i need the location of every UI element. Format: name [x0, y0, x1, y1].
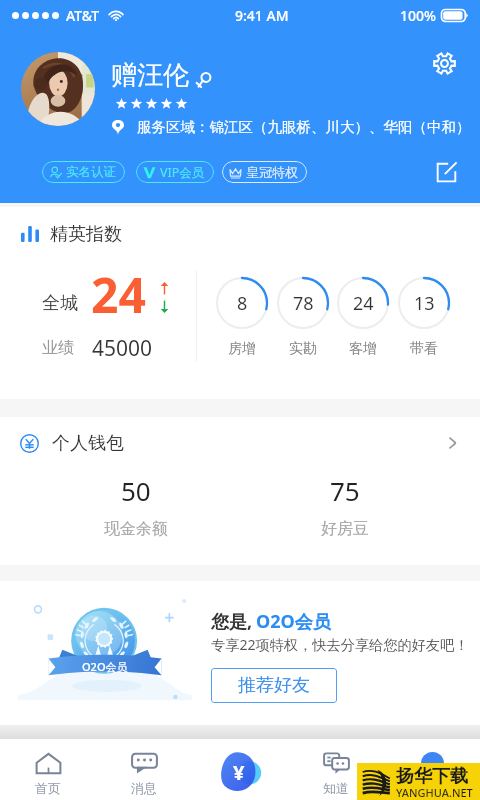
staticText: 75	[330, 473, 360, 508]
staticText: 100%	[400, 6, 436, 25]
button[interactable]: VIP会员	[136, 161, 214, 183]
staticText: 首页	[35, 780, 61, 796]
staticText: 您是,	[211, 609, 253, 634]
staticText: VIP会员	[160, 164, 205, 181]
staticText: 消息	[131, 780, 157, 796]
button[interactable]: 个人钱包	[0, 417, 480, 469]
staticText: O2O会员	[256, 609, 331, 634]
staticText: O2O会员	[82, 659, 128, 674]
staticText: 精英指数	[50, 223, 122, 246]
button[interactable]: Settings	[430, 49, 458, 77]
staticText: 9:41 AM	[235, 6, 289, 25]
staticText: 推荐好友	[238, 674, 310, 697]
staticText: 我的	[419, 780, 445, 796]
staticText: 好房豆	[321, 519, 369, 539]
staticText: 皇冠特权	[246, 164, 298, 180]
staticText: 现金余额	[104, 519, 168, 539]
staticText: 赠汪伦	[111, 59, 189, 92]
staticText: ¥	[233, 759, 245, 786]
staticText: 24	[353, 291, 374, 316]
staticText: 50	[121, 473, 151, 508]
staticText: 业绩	[42, 338, 74, 358]
staticText: YANGHUA.NET	[396, 785, 473, 800]
button[interactable]: 推荐好友	[211, 668, 337, 703]
staticText: 实勘	[289, 340, 317, 358]
button[interactable]: 知道	[288, 739, 384, 800]
staticText: 客增	[349, 340, 377, 358]
staticText: 78	[293, 291, 314, 316]
staticText: AT&T	[66, 6, 100, 25]
staticText: 带看	[410, 340, 438, 358]
staticText: 13	[414, 291, 435, 316]
staticText: 房增	[228, 340, 256, 358]
button[interactable]: 首页	[0, 739, 96, 800]
staticText: 实名认证	[66, 164, 116, 180]
staticText: 个人钱包	[52, 432, 124, 455]
staticText: 专享22项特权，快去分享给您的好友吧！	[211, 635, 469, 654]
button[interactable]: 实名认证	[42, 161, 125, 183]
staticText: 服务区域：锦江区（九眼桥、川大）、华阳（中和）	[137, 118, 471, 136]
staticText: 24	[91, 262, 146, 327]
staticText: 8	[237, 291, 248, 316]
staticText: 全城	[42, 292, 78, 315]
button[interactable]: Earnings	[221, 751, 262, 793]
button[interactable]: Edit profile	[432, 158, 460, 186]
staticText: 知道	[323, 780, 349, 796]
staticText: 扬华下载	[396, 765, 468, 788]
staticText: 45000	[92, 334, 153, 363]
button[interactable]: Mine	[384, 739, 480, 800]
button[interactable]: 消息	[96, 739, 192, 800]
button[interactable]: 皇冠特权	[222, 161, 307, 183]
